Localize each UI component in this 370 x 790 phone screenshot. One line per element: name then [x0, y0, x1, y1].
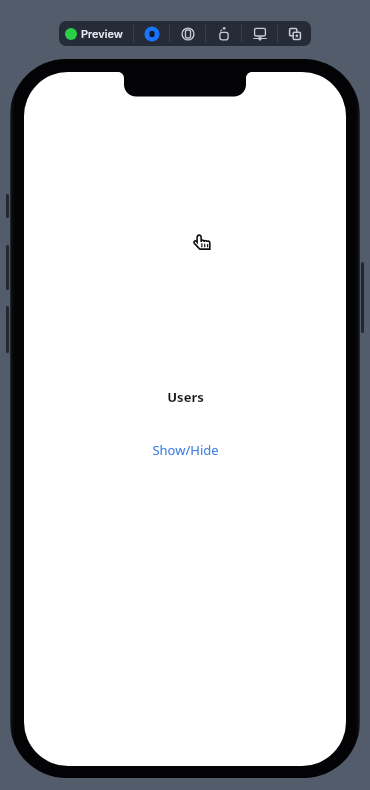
button[interactable]: Device selector — [134, 21, 169, 46]
staticText: Users — [167, 388, 204, 406]
button[interactable]: Add preview — [278, 21, 311, 46]
button[interactable]: Inspect — [170, 21, 205, 46]
staticText: Show/Hide — [152, 441, 219, 459]
button[interactable]: Interactive — [206, 21, 241, 46]
button[interactable]: Show/Hide — [152, 441, 219, 459]
staticText: Preview — [81, 27, 123, 40]
button[interactable]: Run on device — [242, 21, 277, 46]
button[interactable]: Preview — [59, 21, 133, 46]
